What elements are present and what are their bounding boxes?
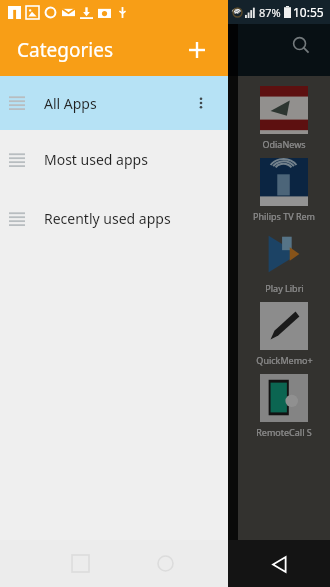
- staticText: Philips TV Rem: [253, 210, 315, 222]
- button[interactable]: OdiaNews: [238, 86, 330, 150]
- staticText: OdiaNews: [262, 138, 306, 150]
- button[interactable]: Back: [259, 544, 299, 584]
- button[interactable]: Most used apps: [0, 130, 228, 189]
- button[interactable]: Play Libri: [238, 230, 330, 294]
- staticText: 10:55: [293, 4, 324, 20]
- button[interactable]: Add category: [182, 35, 212, 65]
- button[interactable]: All Apps: [0, 76, 228, 130]
- staticText: Most used apps: [44, 150, 148, 169]
- staticText: Recently used apps: [44, 209, 171, 228]
- button[interactable]: Recents: [62, 540, 98, 587]
- button[interactable]: QuickMemo+: [238, 302, 330, 366]
- button[interactable]: Recently used apps: [0, 189, 228, 248]
- button[interactable]: Philips TV Rem: [238, 158, 330, 222]
- staticText: 87%: [259, 5, 281, 20]
- button[interactable]: RemoteCall S: [238, 374, 330, 438]
- staticText: QuickMemo+: [256, 354, 313, 366]
- staticText: RemoteCall S: [256, 426, 312, 438]
- staticText: Categories: [17, 37, 113, 63]
- staticText: All Apps: [44, 94, 97, 113]
- staticText: Play Libri: [265, 282, 304, 294]
- button[interactable]: Search: [286, 30, 316, 60]
- button[interactable]: More options: [186, 88, 216, 118]
